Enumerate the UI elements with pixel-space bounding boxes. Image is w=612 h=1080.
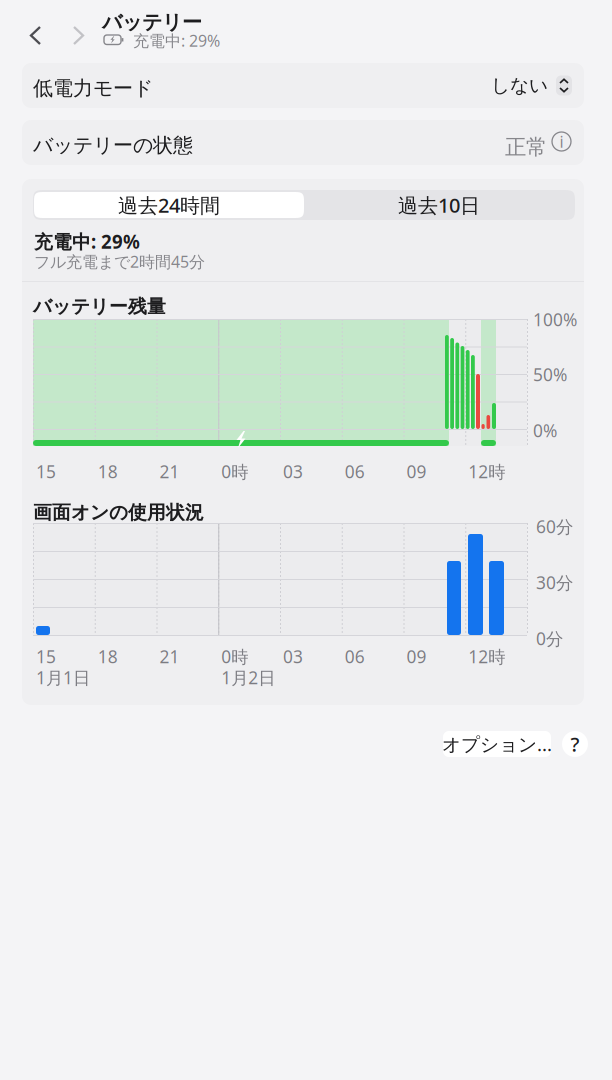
button[interactable]: 進む <box>68 21 89 50</box>
staticText: 0% <box>533 419 557 442</box>
button[interactable]: 戻る <box>25 21 46 50</box>
staticText: 過去24時間 <box>118 192 220 218</box>
staticText: 低電力モード <box>33 76 153 101</box>
staticText: 過去10日 <box>398 192 480 218</box>
staticText: 0時 <box>221 460 248 483</box>
staticText: 18 <box>98 645 118 668</box>
staticText: 06 <box>345 645 365 668</box>
staticText: しない <box>491 74 548 97</box>
button[interactable]: バッテリーの状態について <box>552 132 571 151</box>
staticText: 15 <box>36 460 56 483</box>
staticText: 1月1日 <box>36 666 90 689</box>
staticText: 18 <box>98 460 118 483</box>
staticText: 0分 <box>536 627 563 650</box>
staticText: 21 <box>159 645 179 668</box>
staticText: 50% <box>533 363 567 386</box>
staticText: 12時 <box>468 460 505 483</box>
staticText: 09 <box>406 645 426 668</box>
staticText: 充電中: 29% <box>133 30 220 51</box>
staticText: i <box>559 131 563 152</box>
button[interactable]: オプション... <box>443 731 551 757</box>
button[interactable]: 過去10日 <box>304 192 574 218</box>
staticText: 03 <box>283 645 303 668</box>
button[interactable]: ヘルプ <box>562 731 588 757</box>
staticText: 12時 <box>468 645 505 668</box>
button[interactable]: 過去24時間 <box>34 192 304 218</box>
staticText: 09 <box>406 460 426 483</box>
staticText: 画面オンの使用状況 <box>33 501 204 524</box>
staticText: オプション... <box>442 732 552 756</box>
staticText: フル充電まで2時間45分 <box>34 251 205 272</box>
staticText: バッテリー残量 <box>33 295 166 318</box>
staticText: バッテリー <box>102 10 202 35</box>
staticText: 正常 <box>505 134 547 160</box>
staticText: 充電中: 29% <box>34 229 140 254</box>
staticText: 03 <box>283 460 303 483</box>
staticText: ? <box>570 731 579 757</box>
staticText: 06 <box>345 460 365 483</box>
staticText: 30分 <box>536 571 573 594</box>
staticText: 21 <box>159 460 179 483</box>
staticText: 15 <box>36 645 56 668</box>
staticText: 0時 <box>221 645 248 668</box>
staticText: 100% <box>533 308 577 331</box>
button[interactable]: しない <box>480 63 572 108</box>
staticText: バッテリーの状態 <box>33 133 193 158</box>
staticText: 1月2日 <box>221 666 275 689</box>
staticText: 60分 <box>536 515 573 538</box>
